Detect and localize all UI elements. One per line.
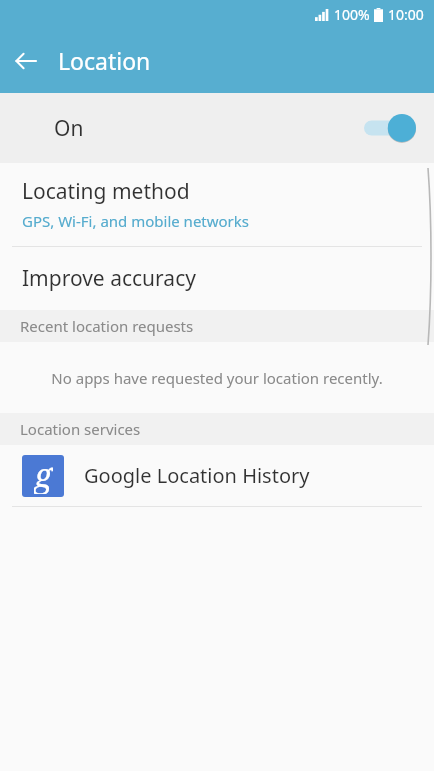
button[interactable]: On bbox=[0, 93, 434, 163]
staticText: 100% bbox=[334, 5, 370, 24]
button[interactable]: g bbox=[0, 445, 434, 506]
staticText: g bbox=[34, 455, 53, 494]
staticText: Improve accuracy bbox=[22, 264, 196, 293]
staticText: 10:00 bbox=[388, 5, 424, 24]
button[interactable]: Locating method bbox=[0, 163, 434, 246]
staticText: Recent location requests bbox=[20, 316, 194, 336]
staticText: Locating method bbox=[22, 177, 190, 206]
staticText: Location bbox=[58, 45, 151, 76]
staticText: No apps have requested your location rec… bbox=[51, 368, 383, 388]
button[interactable]: Back bbox=[0, 35, 52, 87]
staticText: On bbox=[54, 114, 84, 143]
button[interactable]: Improve accuracy bbox=[0, 247, 434, 310]
staticText: Location services bbox=[20, 419, 141, 439]
staticText: GPS, Wi-Fi, and mobile networks bbox=[22, 211, 250, 231]
staticText: Google Location History bbox=[84, 462, 310, 489]
